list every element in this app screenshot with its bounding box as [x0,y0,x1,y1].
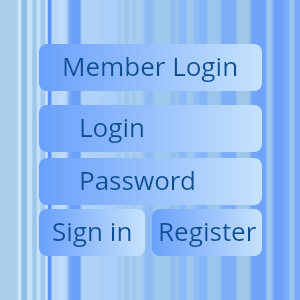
staticText: Member Login [62,48,239,83]
button[interactable]: Member Login [39,44,262,91]
staticText: Register [158,213,257,248]
staticText: Password [79,162,196,197]
staticText: Sign in [52,213,133,248]
button[interactable]: Password [39,158,262,205]
button[interactable]: Sign in [39,209,145,256]
button[interactable]: Register [152,209,262,256]
staticText: Login [79,109,145,144]
button[interactable]: Login [39,105,262,152]
